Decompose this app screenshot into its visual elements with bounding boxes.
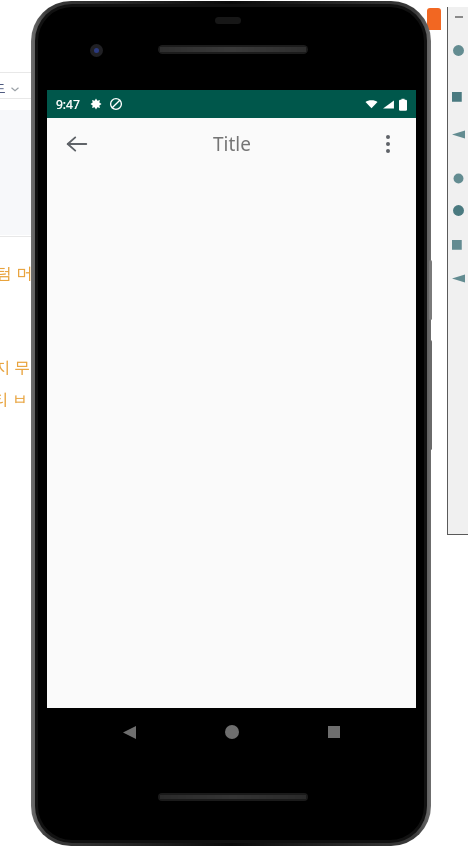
button[interactable]: Home [212, 712, 252, 752]
button[interactable]: Back [109, 712, 149, 752]
staticText: 9:47 [56, 96, 80, 112]
button[interactable]: Back [55, 122, 99, 166]
staticText: 티 ㅂ [0, 388, 29, 410]
staticText: 지 무 [0, 356, 31, 378]
button[interactable]: Recents [314, 712, 354, 752]
staticText: Title [213, 131, 251, 157]
staticText: 드 [0, 80, 6, 98]
staticText: 텀 머 [0, 262, 33, 284]
button[interactable]: More options [366, 122, 410, 166]
